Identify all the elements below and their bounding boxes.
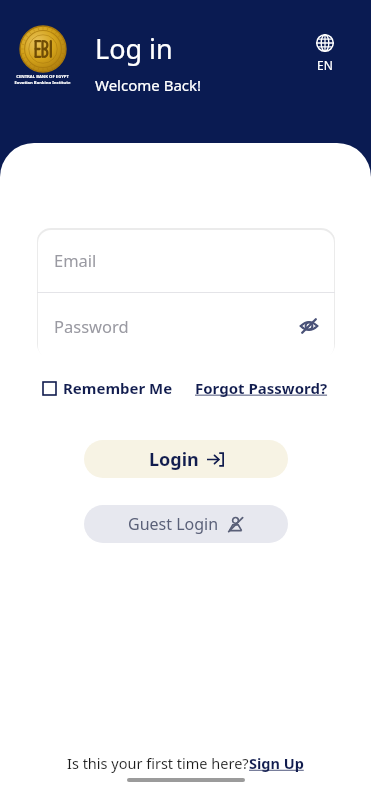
staticText: Welcome Back! <box>95 75 202 95</box>
button[interactable]: Email <box>37 227 335 292</box>
staticText: CENTRAL BANK OF EGYPT <box>16 74 69 80</box>
staticText: Forgot Password? <box>195 378 328 398</box>
staticText: Password <box>54 315 129 337</box>
button[interactable]: Login <box>84 440 288 478</box>
button[interactable]: Show password <box>292 309 326 343</box>
staticText: Guest Login <box>128 513 219 535</box>
button[interactable]: Guest Login <box>84 505 288 543</box>
staticText: Email <box>54 249 97 271</box>
staticText: Login <box>149 447 199 472</box>
button[interactable]: Sign Up <box>249 753 304 773</box>
staticText: Sign Up <box>249 753 304 773</box>
button[interactable]: Change language <box>304 30 346 77</box>
staticText: Log in <box>95 30 173 67</box>
staticText: Egyptian Banking Institute <box>14 80 71 84</box>
staticText: EN <box>317 57 333 73</box>
button[interactable]: Password <box>37 293 335 358</box>
button[interactable]: Remember Me <box>41 376 175 400</box>
staticText: Remember Me <box>63 378 173 398</box>
button[interactable]: Forgot Password? <box>193 376 330 400</box>
staticText: Is this your first time here? <box>67 753 249 773</box>
